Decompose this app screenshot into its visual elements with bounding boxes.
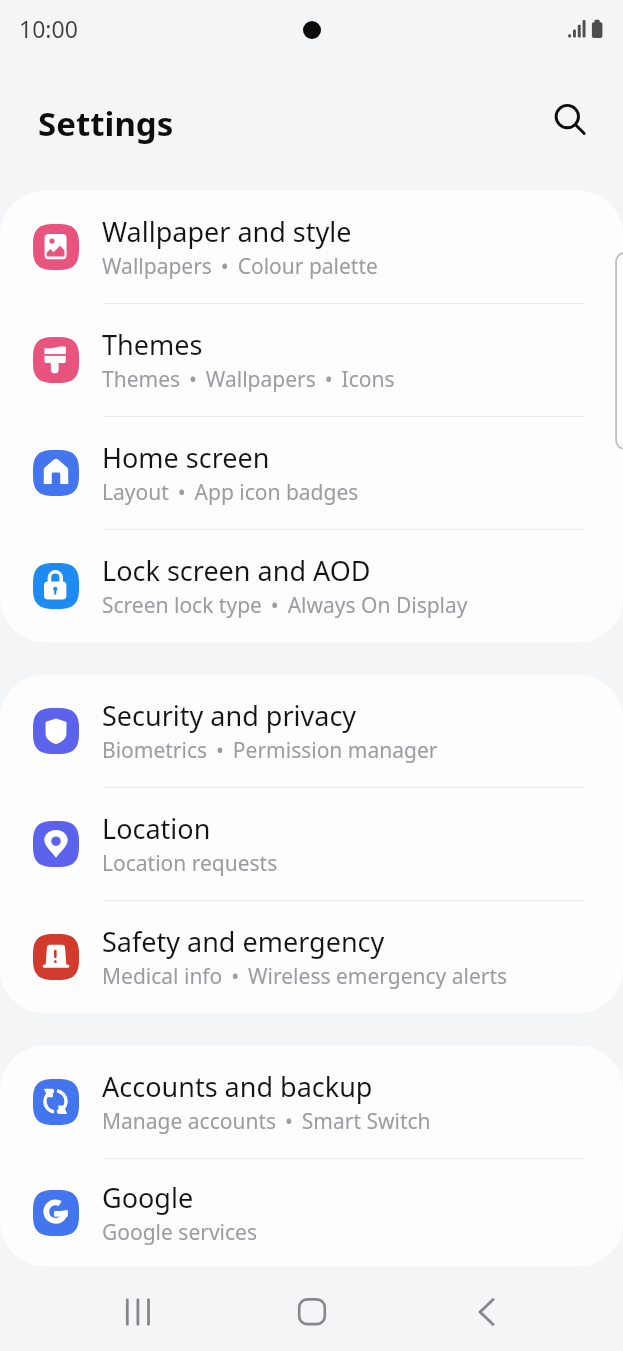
staticText: Medical info • Wireless emergency alerts [102,962,508,991]
staticText: Security and privacy [102,697,357,734]
staticText: Accounts and backup [102,1068,373,1105]
staticText: Location [102,810,211,847]
staticText: Wallpaper and style [102,213,352,250]
staticText: Screen lock type • Always On Display [102,591,468,620]
button[interactable]: Themes [0,304,623,416]
staticText: Home screen [102,439,270,476]
staticText: Themes • Wallpapers • Icons [102,365,395,394]
button[interactable]: Google [0,1159,623,1266]
button[interactable]: Lock screen and AOD [0,530,623,642]
button[interactable]: Home [282,1282,342,1342]
staticText: Manage accounts • Smart Switch [102,1107,431,1136]
staticText: Themes [102,326,203,363]
button[interactable]: Security and privacy [0,675,623,787]
staticText: Wallpapers • Colour palette [102,252,378,281]
staticText: Layout • App icon badges [102,478,359,507]
button[interactable]: Accounts and backup [0,1046,623,1158]
button[interactable]: Recent apps [108,1282,168,1342]
button[interactable]: Location [0,788,623,900]
button[interactable]: Search [546,97,592,143]
staticText: Lock screen and AOD [102,552,371,589]
button[interactable]: Home screen [0,417,623,529]
staticText: Google [102,1179,194,1216]
staticText: 10:00 [19,13,78,44]
staticText: Biometrics • Permission manager [102,736,438,765]
staticText: Google services [102,1218,257,1247]
staticText: Location requests [102,849,278,878]
button[interactable]: Safety and emergency [0,901,623,1013]
staticText: Settings [38,101,174,146]
staticText: Safety and emergency [102,923,385,960]
button[interactable]: Wallpaper and style [0,191,623,303]
button[interactable]: Back [457,1282,517,1342]
